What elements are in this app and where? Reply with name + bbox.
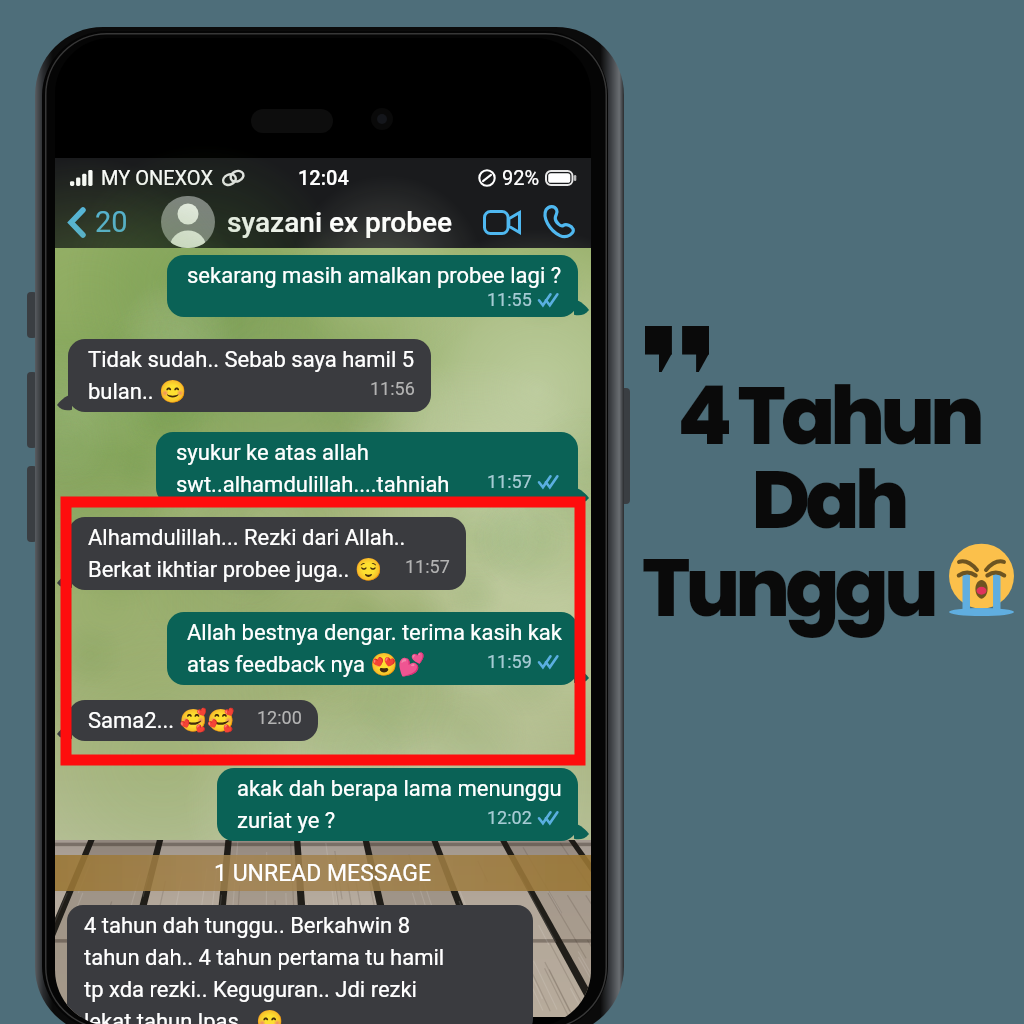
button[interactable]: Voice call [537, 199, 583, 245]
staticText: Dah [751, 444, 905, 556]
staticText: 12:04 [298, 166, 349, 189]
staticText: 11:56 [370, 378, 415, 399]
button[interactable]: Video call [479, 199, 525, 245]
staticText: syukur ke atas allah swt..alhamdulillah.… [176, 440, 562, 498]
staticText: 92% [502, 166, 540, 189]
staticText: 11:55 [487, 289, 532, 310]
staticText: 12:02 [487, 807, 532, 828]
staticText: 11:57 [487, 471, 532, 492]
staticText: 4 tahun dah tunggu.. Berkahwin 8 tahun d… [84, 913, 445, 1024]
staticText: 20 [95, 205, 128, 239]
staticText: sekarang masih amalkan probee lagi ? [187, 263, 562, 289]
staticText: Allah bestnya dengar. terima kasih kak a… [187, 620, 562, 678]
staticText: akak dah berapa lama menunggu zuriat ye … [237, 776, 562, 834]
staticText: Tunggu [642, 532, 934, 644]
staticText: 11:57 [405, 556, 450, 577]
staticText: Tidak sudah.. Sebab saya hamil 5 bulan..… [88, 347, 415, 405]
staticText: MY ONEXOX [101, 166, 213, 189]
staticText: 11:59 [487, 651, 532, 672]
staticText: Alhamdulillah... Rezki dari Allah.. Berk… [88, 525, 450, 583]
button[interactable]: 20 [61, 199, 135, 245]
staticText: syazani ex probee [227, 206, 452, 239]
staticText: 12:00 [257, 707, 302, 728]
staticText: 4 Tahun [677, 360, 980, 472]
staticText: 1 UNREAD MESSAGE [214, 860, 432, 887]
staticText: Sama2... 🥰🥰 [88, 708, 235, 734]
